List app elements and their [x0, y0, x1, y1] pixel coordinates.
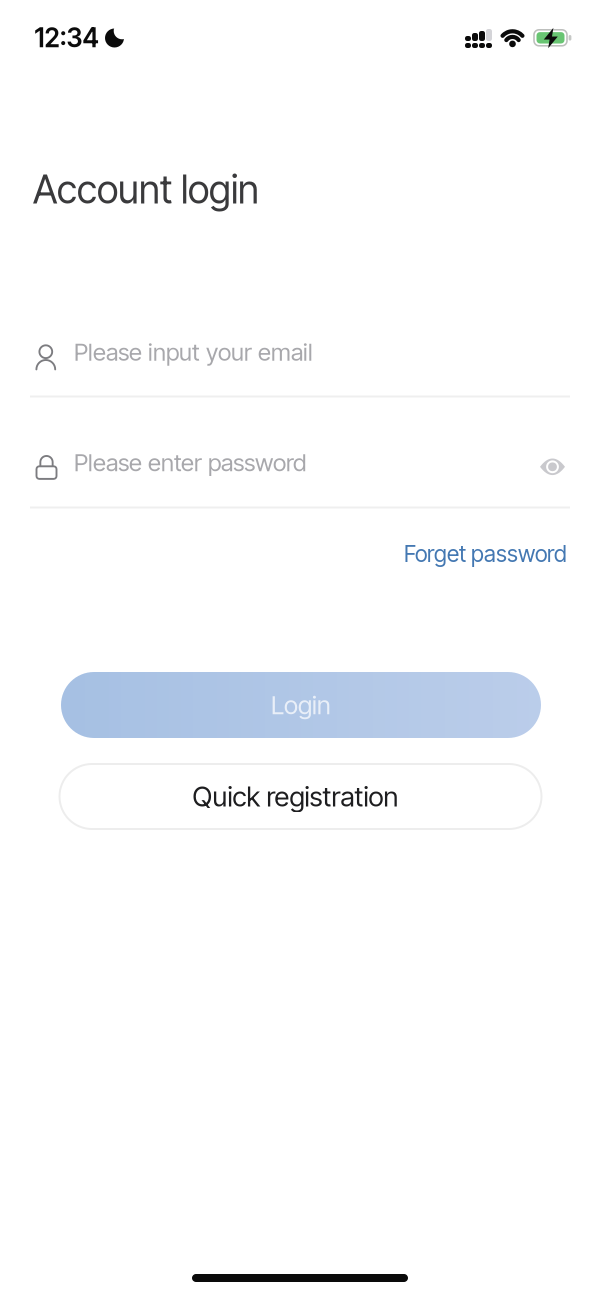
button[interactable]: Forget password	[404, 540, 567, 567]
button[interactable]: Quick registration	[59, 764, 541, 829]
staticText: Forget password	[404, 540, 567, 567]
button[interactable]: Please enter password	[30, 448, 570, 510]
staticText: Quick registration	[192, 780, 398, 813]
button[interactable]: Login	[61, 672, 541, 738]
button[interactable]: Show password	[536, 453, 569, 480]
staticText: 12:34	[34, 22, 98, 53]
staticText: Account login	[33, 166, 259, 213]
staticText: Please input your email	[74, 337, 313, 366]
staticText: Please enter password	[74, 448, 306, 477]
button[interactable]: Please input your email	[30, 336, 570, 398]
staticText: Login	[271, 690, 331, 720]
